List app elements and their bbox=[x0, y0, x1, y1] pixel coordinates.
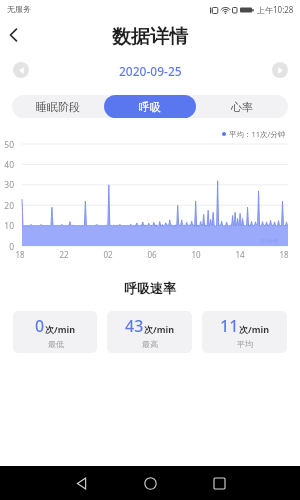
button[interactable]: Home bbox=[135, 468, 165, 498]
staticText: 10 bbox=[186, 249, 206, 260]
staticText: 18 bbox=[10, 249, 30, 260]
staticText: 平均：11次/分钟 bbox=[229, 129, 286, 139]
staticText: 最高 bbox=[142, 339, 158, 349]
staticText: 上午10:28 bbox=[257, 4, 294, 15]
staticText: 最低 bbox=[48, 339, 64, 349]
staticText: 18 bbox=[274, 249, 294, 260]
button[interactable]: 43 bbox=[107, 311, 192, 353]
button[interactable]: Recents bbox=[204, 468, 234, 498]
staticText: 睡眠阶段 bbox=[36, 100, 80, 114]
staticText: 呼吸速率 bbox=[0, 280, 300, 296]
staticText: 02 bbox=[98, 249, 118, 260]
staticText: 0 bbox=[35, 315, 45, 337]
staticText: 10 bbox=[0, 220, 14, 232]
staticText: 次/min bbox=[45, 323, 76, 335]
staticText: 数据详情 bbox=[112, 25, 188, 49]
button[interactable]: 0 bbox=[13, 311, 97, 353]
staticText: 11 bbox=[220, 315, 239, 337]
staticText: 50 bbox=[0, 139, 14, 151]
staticText: 43 bbox=[125, 315, 144, 337]
staticText: 22 bbox=[54, 249, 74, 260]
staticText: 次/分钟 bbox=[260, 237, 279, 245]
staticText: 0 bbox=[0, 241, 14, 253]
staticText: 次/min bbox=[239, 323, 270, 335]
staticText: 2020-09-25 bbox=[119, 63, 182, 79]
button[interactable]: Back bbox=[66, 468, 96, 498]
staticText: 06 bbox=[142, 249, 162, 260]
staticText: 14 bbox=[230, 249, 250, 260]
staticText: 次/min bbox=[144, 323, 175, 335]
button[interactable]: 睡眠阶段 bbox=[12, 95, 104, 118]
staticText: 平均 bbox=[237, 339, 253, 349]
staticText: 20 bbox=[0, 200, 14, 212]
staticText: 呼吸 bbox=[139, 100, 161, 114]
button[interactable]: Previous day bbox=[13, 62, 29, 78]
button[interactable]: Next day bbox=[272, 62, 288, 78]
staticText: 40 bbox=[0, 159, 14, 171]
staticText: 30 bbox=[0, 179, 14, 191]
button[interactable]: 心率 bbox=[196, 95, 288, 118]
staticText: 心率 bbox=[231, 100, 253, 114]
button[interactable]: 11 bbox=[202, 311, 287, 353]
staticText: 无服务 bbox=[7, 4, 31, 14]
button[interactable]: 呼吸 bbox=[104, 95, 196, 118]
button[interactable]: Back bbox=[0, 20, 30, 50]
